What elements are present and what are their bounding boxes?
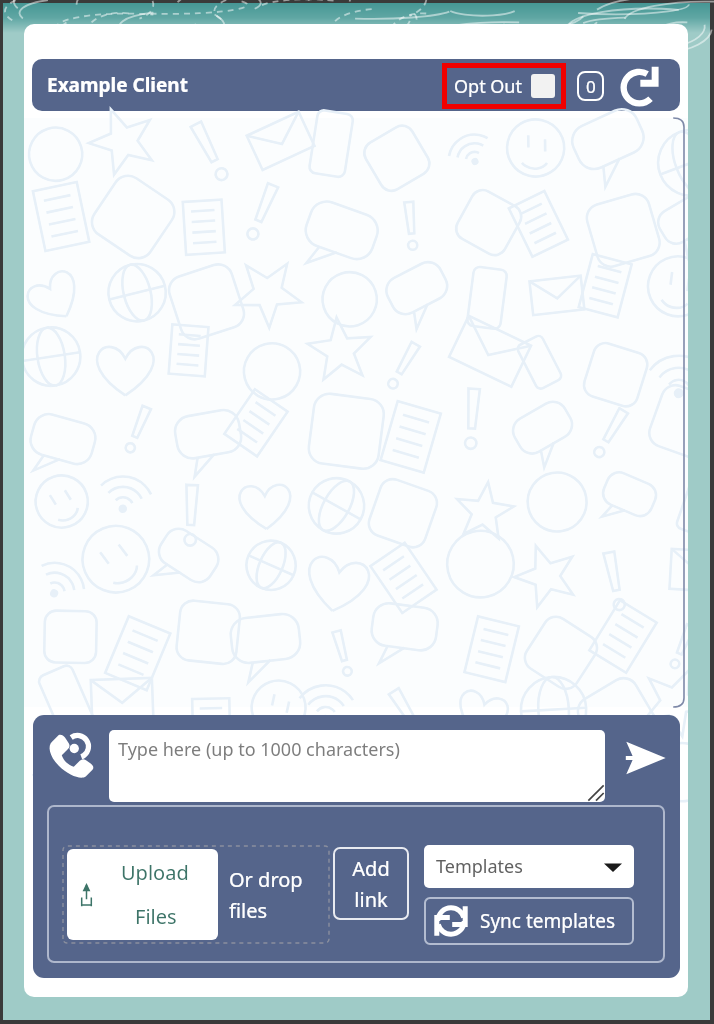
button[interactable]: Templates — [424, 845, 634, 888]
button[interactable]: Upload — [67, 849, 218, 940]
button[interactable]: Call — [42, 725, 100, 783]
staticText: 0 — [586, 75, 596, 98]
button[interactable]: Unread count — [577, 71, 604, 101]
staticText: Opt Out — [454, 74, 522, 99]
button[interactable]: Opt Out — [442, 63, 566, 109]
staticText: Or drop files — [229, 866, 303, 923]
button[interactable]: Type here (up to 1000 characters) — [109, 730, 605, 802]
staticText: Upload — [121, 859, 189, 886]
button[interactable]: Send — [618, 731, 672, 785]
staticText: Templates — [436, 854, 523, 879]
staticText: Sync templates — [480, 908, 616, 934]
button[interactable]: Refresh — [618, 62, 665, 109]
button[interactable]: Sync templates — [424, 897, 634, 945]
staticText: Example Client — [47, 72, 188, 98]
staticText: Type here (up to 1000 characters) — [118, 737, 400, 762]
button[interactable]: Add link — [333, 847, 409, 920]
staticText: Files — [135, 903, 177, 930]
staticText: Add link — [352, 855, 390, 912]
